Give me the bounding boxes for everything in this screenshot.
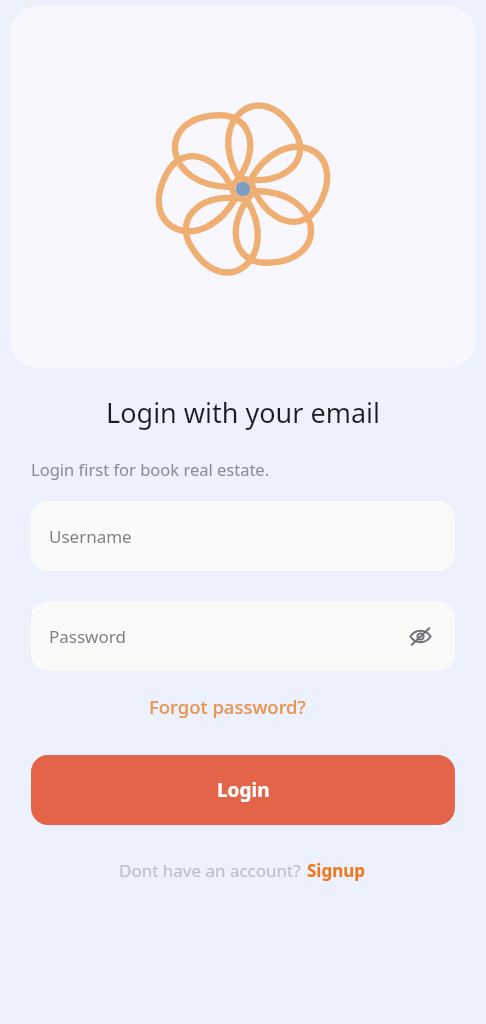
staticText: Forgot password? <box>149 694 306 719</box>
button[interactable]: Forgot password? <box>145 691 310 722</box>
staticText: Login first for book real estate. <box>31 458 270 480</box>
staticText: Signup <box>307 859 366 882</box>
staticText: Login with your email <box>31 394 455 431</box>
staticText: Dont have an account? <box>119 859 305 882</box>
staticText: Login <box>217 777 270 803</box>
staticText: Password <box>49 625 126 648</box>
button[interactable]: Password <box>31 601 455 671</box>
staticText: Username <box>49 525 132 548</box>
button[interactable]: Show password <box>403 619 437 653</box>
button[interactable]: Username <box>31 501 455 571</box>
button[interactable]: Login <box>31 755 455 825</box>
button[interactable]: Signup <box>305 857 368 884</box>
